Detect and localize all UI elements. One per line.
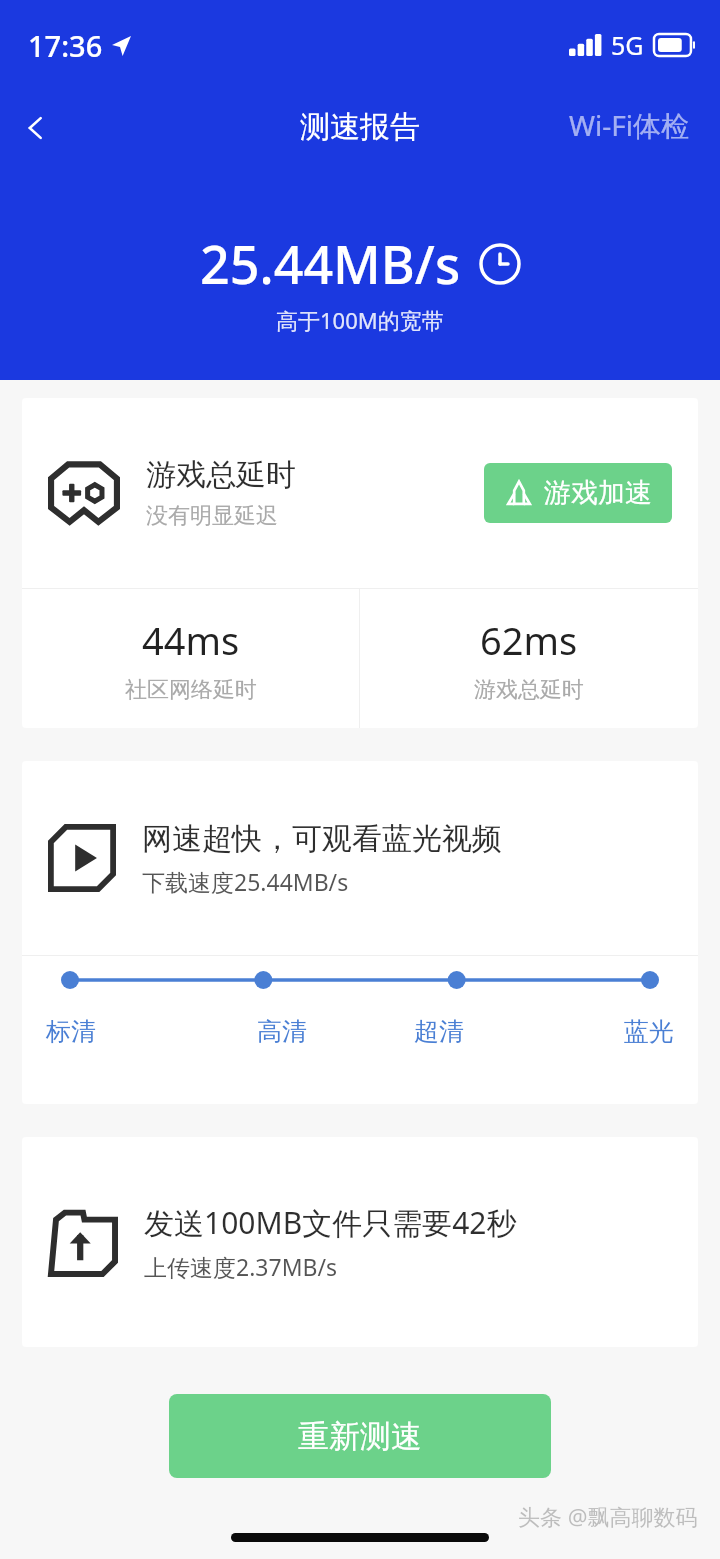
staticText: 62ms bbox=[480, 614, 578, 666]
button[interactable]: Back bbox=[8, 100, 64, 156]
button[interactable]: 发送100MB文件只需要42秒 bbox=[22, 1137, 698, 1347]
staticText: 17:36 bbox=[28, 26, 103, 65]
staticText: Wi-Fi体检 bbox=[569, 106, 690, 144]
staticText: 上传速度2.37MB/s bbox=[144, 1251, 338, 1282]
staticText: 5G bbox=[611, 28, 644, 62]
staticText: 超清 bbox=[414, 1016, 464, 1047]
staticText: 高清 bbox=[257, 1016, 307, 1047]
staticText: 网速超快，可观看蓝光视频 bbox=[142, 820, 502, 858]
staticText: 游戏总延时 bbox=[146, 456, 296, 494]
staticText: 社区网络延时 bbox=[125, 676, 257, 704]
staticText: 25.44MB/s bbox=[200, 228, 461, 299]
staticText: 游戏总延时 bbox=[474, 676, 584, 704]
staticText: 高于100M的宽带 bbox=[276, 305, 444, 335]
staticText: 游戏加速 bbox=[544, 476, 652, 510]
staticText: 蓝光 bbox=[624, 1016, 674, 1047]
button[interactable]: 游戏加速 bbox=[484, 463, 672, 523]
staticText: 没有明显延迟 bbox=[146, 502, 278, 530]
staticText: 头条 @飘高聊数码 bbox=[518, 1501, 698, 1531]
button[interactable]: Wi-Fi体检 bbox=[565, 100, 694, 150]
staticText: 重新测速 bbox=[298, 1417, 422, 1456]
staticText: 44ms bbox=[142, 614, 240, 666]
button[interactable]: 游戏总延时 bbox=[22, 398, 698, 588]
button[interactable]: 62ms bbox=[360, 589, 698, 728]
button[interactable]: 网速超快，可观看蓝光视频 bbox=[22, 761, 698, 955]
staticText: 下载速度25.44MB/s bbox=[142, 866, 349, 897]
staticText: 标清 bbox=[46, 1016, 96, 1047]
button[interactable]: 重新测速 bbox=[169, 1394, 551, 1478]
staticText: 发送100MB文件只需要42秒 bbox=[144, 1202, 517, 1243]
button[interactable]: 44ms bbox=[22, 589, 359, 728]
staticText: 测速报告 bbox=[300, 108, 420, 146]
